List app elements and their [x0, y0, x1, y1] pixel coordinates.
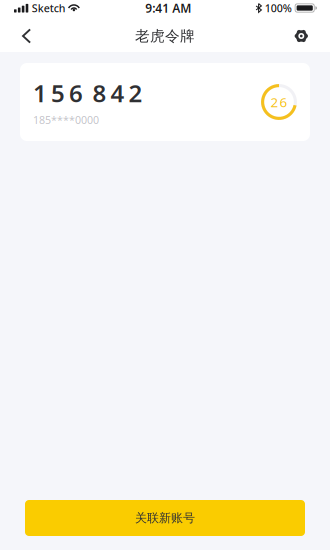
staticText: 5	[51, 77, 65, 109]
staticText: 老虎令牌	[135, 27, 195, 45]
staticText: 2	[271, 93, 279, 111]
staticText: 185****0000	[33, 113, 99, 127]
staticText: 2	[128, 77, 142, 109]
staticText: Sketch	[32, 1, 66, 15]
button[interactable]: Back	[0, 21, 62, 51]
staticText: 9:41 AM	[145, 0, 191, 16]
staticText: 关联新账号	[135, 511, 195, 525]
staticText: 6	[69, 77, 83, 109]
staticText: 6	[279, 93, 287, 111]
button[interactable]: 关联新账号	[25, 500, 305, 536]
staticText: 4	[110, 77, 124, 109]
staticText: 1	[33, 77, 47, 109]
staticText: 100%	[265, 1, 292, 15]
staticText: 8	[92, 77, 106, 109]
button[interactable]: Settings	[268, 21, 330, 51]
